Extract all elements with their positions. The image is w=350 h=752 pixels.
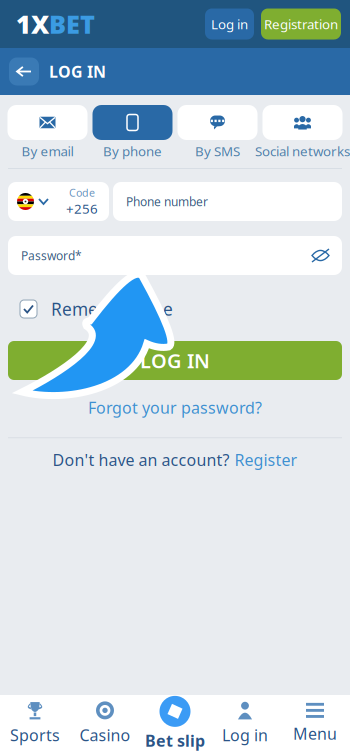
button[interactable]: Password* (8, 236, 342, 275)
staticText: Registration (264, 15, 338, 33)
button[interactable]: Log in (205, 8, 254, 39)
button[interactable]: Phone number (113, 182, 342, 221)
button[interactable]: Casino (70, 701, 140, 746)
staticText: +256 (66, 200, 98, 217)
staticText: Phone number (126, 193, 208, 209)
button[interactable]: By email (7, 105, 87, 162)
button[interactable]: Social networks (262, 105, 342, 162)
button[interactable]: LOG IN (8, 341, 342, 380)
staticText: BET (49, 7, 95, 41)
staticText: Menu (293, 723, 337, 744)
staticText: By email (21, 142, 73, 160)
staticText: Code (69, 186, 95, 200)
staticText: Don't have an account? (52, 449, 229, 470)
button[interactable]: Register (234, 449, 297, 470)
staticText: Casino (79, 724, 130, 746)
button[interactable]: By phone (92, 105, 172, 162)
staticText: LOG IN (49, 61, 106, 82)
button[interactable]: Forgot your password? (88, 392, 262, 423)
button[interactable]: Remember me (0, 297, 350, 321)
staticText: Register (234, 449, 297, 470)
staticText: By phone (103, 142, 162, 160)
staticText: Bet slip (145, 730, 205, 751)
button[interactable]: Bet slip (140, 696, 210, 751)
staticText: LOG IN (140, 347, 210, 374)
button[interactable]: Sports (0, 701, 70, 746)
staticText: Log in (211, 15, 248, 33)
staticText: Sports (10, 724, 60, 746)
staticText: Log in (222, 724, 268, 746)
button[interactable]: Menu (280, 703, 350, 744)
button[interactable]: Code (8, 182, 109, 221)
staticText: By SMS (195, 142, 240, 160)
staticText: 1X (16, 7, 49, 41)
button[interactable]: By SMS (177, 105, 257, 162)
button[interactable]: Registration (261, 8, 341, 39)
staticText: Remember me (51, 297, 173, 320)
staticText: Password* (21, 247, 82, 263)
button[interactable]: Back (9, 57, 39, 85)
button[interactable]: Log in (210, 701, 280, 746)
staticText: Social networks (255, 142, 350, 160)
staticText: Forgot your password? (88, 397, 262, 418)
